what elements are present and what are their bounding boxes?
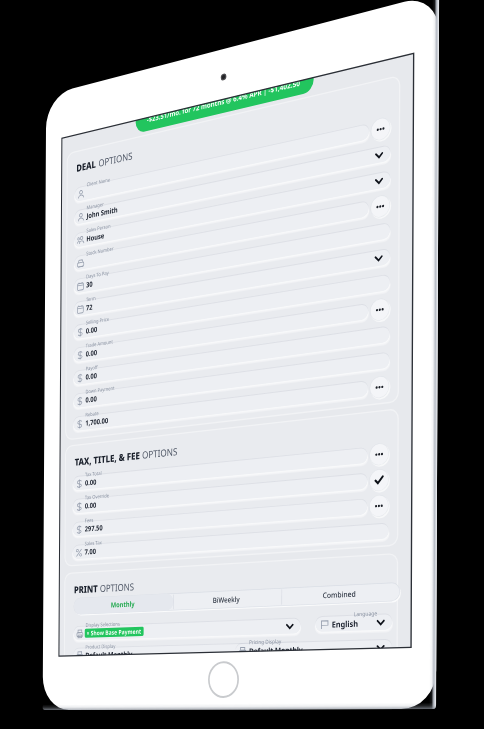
button[interactable]: Deal options on tablet	[0, 0, 484, 729]
